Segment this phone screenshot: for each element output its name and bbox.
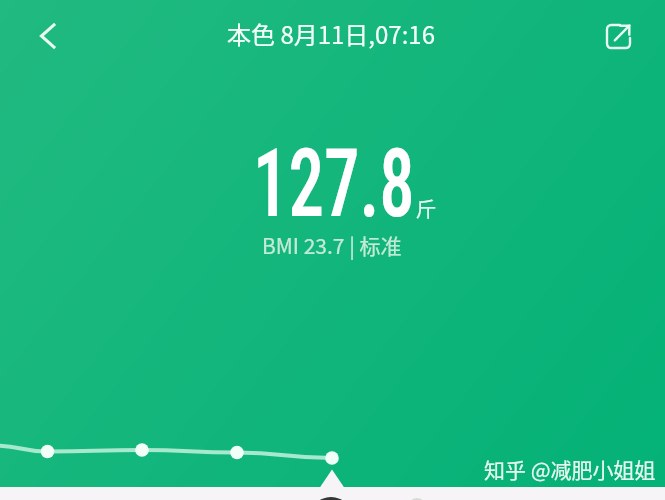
staticText: 知乎 @减肥小姐姐 <box>484 454 656 484</box>
staticText: 127.8 <box>253 129 415 239</box>
staticText: 本色 8月11日,07:16 <box>227 16 435 51</box>
button[interactable]: Back <box>22 10 74 62</box>
button[interactable]: Share <box>592 10 644 62</box>
staticText: BMI 23.7 | 标准 <box>262 230 402 260</box>
staticText: 斤 <box>416 194 436 223</box>
button[interactable]: Add measurement <box>309 489 353 500</box>
